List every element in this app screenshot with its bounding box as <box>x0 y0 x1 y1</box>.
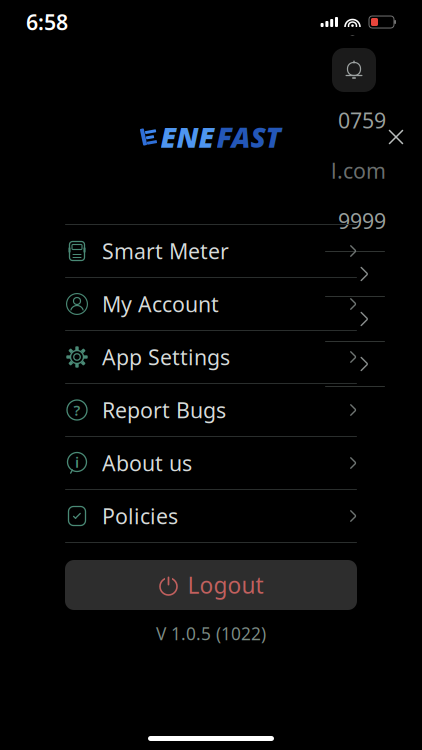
button[interactable]: Close <box>379 120 413 154</box>
button[interactable]: Notifications <box>332 48 376 92</box>
button[interactable]: Policies <box>65 490 357 542</box>
staticText: About us <box>102 449 192 477</box>
button[interactable]: i <box>65 437 357 489</box>
staticText: ? <box>73 400 80 420</box>
staticText: V 1.0.5 (1022) <box>156 622 266 645</box>
staticText: 6:58 <box>26 8 68 36</box>
staticText: FAST <box>216 118 280 156</box>
staticText: 9999 <box>338 207 386 235</box>
staticText: Smart Meter <box>102 237 229 265</box>
button[interactable]: ? <box>65 384 357 436</box>
staticText: l.com <box>331 156 386 185</box>
staticText: ENE <box>160 118 214 156</box>
staticText: i <box>75 452 79 472</box>
staticText: Report Bugs <box>102 396 226 424</box>
staticText: App Settings <box>102 343 230 371</box>
staticText: My Account <box>102 290 219 318</box>
button[interactable]: App Settings <box>65 331 357 383</box>
button[interactable]: Smart Meter <box>65 225 357 277</box>
staticText: 0759 <box>338 106 386 134</box>
staticText: Policies <box>102 502 178 530</box>
staticText: Logout <box>187 570 263 600</box>
button[interactable]: My Account <box>65 278 357 330</box>
button[interactable]: Logout <box>65 560 357 610</box>
